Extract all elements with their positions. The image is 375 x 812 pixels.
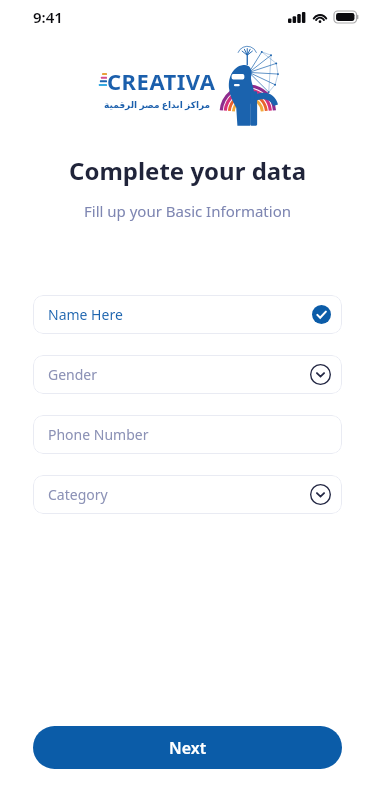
staticText: 9:41 xyxy=(33,7,63,27)
staticText: Next xyxy=(169,737,207,759)
button[interactable]: Phone Number xyxy=(33,415,342,454)
staticText: Name Here xyxy=(48,305,123,324)
other: Open Category options xyxy=(310,484,331,505)
staticText: CREATIVA xyxy=(107,66,216,96)
staticText: مراكز ابداع مصر الرقمية xyxy=(104,98,211,110)
staticText: Complete your data xyxy=(0,154,375,187)
staticText: Fill up your Basic Information xyxy=(0,201,375,221)
button[interactable]: Gender xyxy=(33,355,342,394)
staticText: Category xyxy=(48,485,108,504)
staticText: Gender xyxy=(48,365,98,384)
staticText: Phone Number xyxy=(48,425,149,444)
button[interactable]: Category xyxy=(33,475,342,514)
button[interactable]: Name Here xyxy=(33,295,342,334)
other: Open Gender options xyxy=(310,364,331,385)
other: Valid xyxy=(312,305,331,324)
button[interactable]: Next xyxy=(33,726,342,769)
